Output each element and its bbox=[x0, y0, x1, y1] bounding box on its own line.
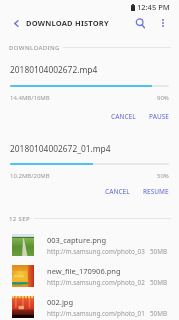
button[interactable]: Search bbox=[129, 12, 151, 34]
button[interactable]: PAUSE bbox=[145, 110, 173, 123]
staticText: DOWNLOAD HISTORY bbox=[26, 18, 109, 28]
staticText: new_file_170906.png bbox=[47, 266, 121, 276]
staticText: 50% bbox=[157, 172, 169, 180]
staticText: 50MB bbox=[150, 247, 168, 256]
staticText: DOWNLOADING bbox=[9, 44, 60, 52]
staticText: http://m.samsung.com/photo_03 bbox=[47, 247, 145, 256]
staticText: 50MB bbox=[150, 309, 168, 318]
staticText: 12 SEP bbox=[9, 215, 31, 223]
button[interactable]: CANCEL bbox=[107, 110, 140, 123]
button[interactable]: 002.jpg bbox=[0, 294, 179, 320]
staticText: 12:45 PM bbox=[137, 2, 170, 12]
staticText: 003_capture.png bbox=[47, 235, 107, 245]
staticText: CANCEL bbox=[111, 112, 136, 121]
staticText: 50MB bbox=[150, 278, 168, 287]
staticText: 20180104002672.mp4 bbox=[10, 64, 98, 75]
staticText: 20180104002672_01.mp4 bbox=[10, 143, 111, 154]
staticText: RESUME bbox=[143, 187, 169, 196]
staticText: 14.4MB/16MB bbox=[10, 94, 50, 102]
staticText: 10.2MB/20MB bbox=[10, 172, 50, 180]
staticText: CANCEL bbox=[105, 187, 130, 196]
staticText: 90% bbox=[157, 94, 169, 102]
button[interactable]: More options bbox=[152, 12, 174, 34]
button[interactable]: 20180104002672.mp4 bbox=[0, 64, 179, 123]
button[interactable]: CANCEL bbox=[101, 185, 134, 198]
button[interactable]: Navigate up bbox=[5, 12, 27, 34]
button[interactable]: new_file_170906.png bbox=[0, 263, 179, 289]
button[interactable]: RESUME bbox=[139, 185, 173, 198]
staticText: 002.jpg bbox=[47, 297, 74, 307]
staticText: PAUSE bbox=[149, 112, 169, 121]
button[interactable]: 20180104002672_01.mp4 bbox=[0, 143, 179, 198]
staticText: http://m.samsung.com/photo_02 bbox=[47, 278, 145, 287]
button[interactable]: 003_capture.png bbox=[0, 232, 179, 258]
staticText: http://m.samsung.com/photo_01 bbox=[47, 309, 145, 318]
